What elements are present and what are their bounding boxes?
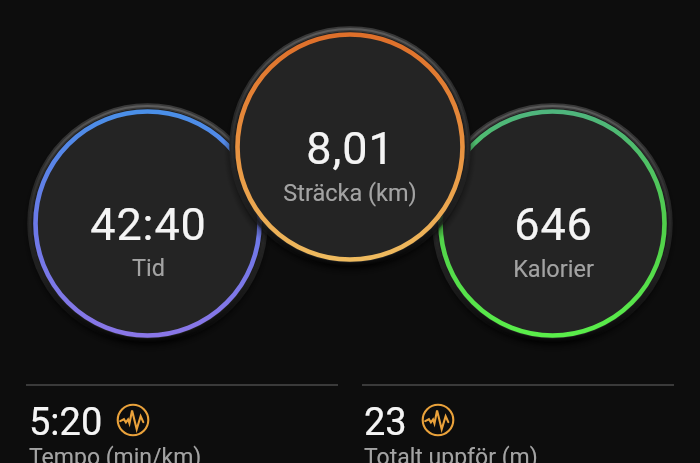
button[interactable] bbox=[233, 30, 468, 265]
staticText: Totalt uppför (m) bbox=[364, 444, 538, 463]
button[interactable] bbox=[31, 107, 265, 341]
staticText: 8,01 bbox=[306, 122, 395, 175]
button[interactable] bbox=[24, 396, 340, 463]
staticText: 5:20 bbox=[29, 400, 103, 445]
staticText: 23 bbox=[364, 400, 407, 445]
staticText: Tempo (min/km) bbox=[29, 444, 202, 463]
staticText: 42:40 bbox=[90, 198, 207, 251]
staticText: Kalorier bbox=[513, 255, 594, 283]
button[interactable]: Pace detail bbox=[116, 403, 150, 437]
button[interactable]: Elevation detail bbox=[421, 403, 455, 437]
staticText: Tid bbox=[132, 254, 165, 282]
button[interactable] bbox=[360, 396, 676, 463]
staticText: Sträcka (km) bbox=[283, 179, 417, 207]
button[interactable] bbox=[436, 107, 670, 341]
staticText: 646 bbox=[514, 198, 593, 251]
